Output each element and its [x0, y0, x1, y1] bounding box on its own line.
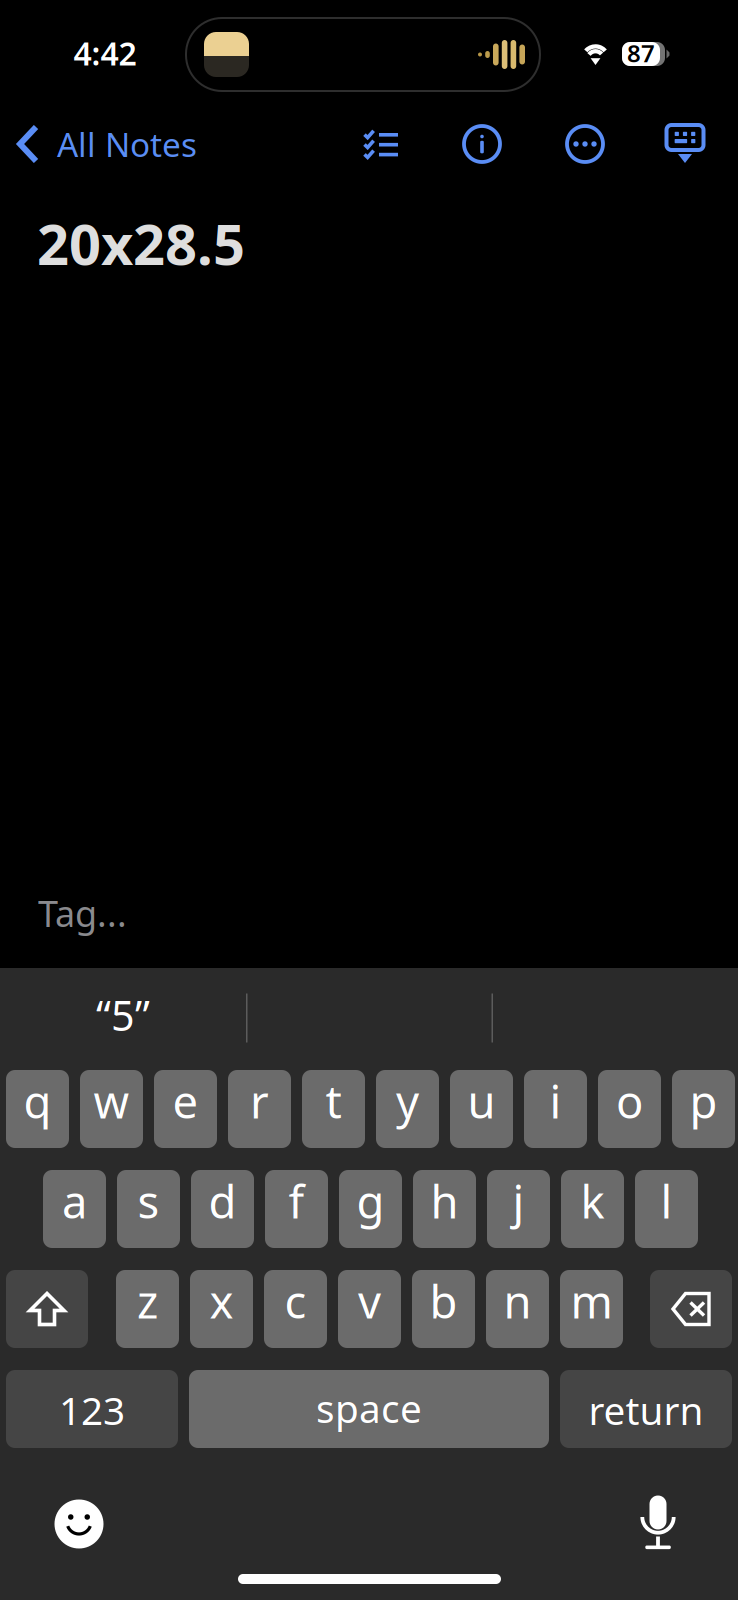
- button[interactable]: Emoji: [39, 1493, 119, 1555]
- staticText: s: [137, 1171, 159, 1231]
- staticText: w: [93, 1071, 129, 1131]
- staticText: q: [23, 1071, 51, 1131]
- button[interactable]: o: [598, 1070, 661, 1148]
- button[interactable]: v: [338, 1270, 401, 1348]
- button[interactable]: All Notes: [0, 108, 209, 180]
- button[interactable]: n: [486, 1270, 549, 1348]
- staticText: u: [467, 1071, 495, 1131]
- staticText: 20x28.5: [37, 206, 245, 280]
- button[interactable]: j: [487, 1170, 550, 1248]
- staticText: f: [288, 1171, 304, 1231]
- button[interactable]: i: [524, 1070, 587, 1148]
- staticText: 123: [59, 1384, 125, 1436]
- button[interactable]: p: [672, 1070, 735, 1148]
- button[interactable]: Delete: [650, 1270, 732, 1348]
- button[interactable]: c: [264, 1270, 327, 1348]
- staticText: i: [549, 1071, 561, 1131]
- button[interactable]: d: [191, 1170, 254, 1248]
- staticText: a: [62, 1171, 87, 1231]
- staticText: x: [209, 1271, 233, 1331]
- staticText: return: [588, 1384, 703, 1436]
- staticText: z: [137, 1271, 158, 1331]
- button[interactable]: z: [116, 1270, 179, 1348]
- staticText: “5”: [96, 988, 150, 1042]
- button[interactable]: Checklist: [345, 108, 417, 180]
- staticText: c: [284, 1271, 306, 1331]
- button[interactable]: Shift: [6, 1270, 88, 1348]
- staticText: l: [660, 1171, 672, 1231]
- staticText: v: [358, 1271, 381, 1331]
- staticText: b: [429, 1271, 457, 1331]
- button[interactable]: More: [549, 108, 621, 180]
- button[interactable]: u: [450, 1070, 513, 1148]
- staticText: e: [172, 1071, 198, 1131]
- button[interactable]: g: [339, 1170, 402, 1248]
- button[interactable]: f: [265, 1170, 328, 1248]
- button[interactable]: e: [154, 1070, 217, 1148]
- button[interactable]: space: [189, 1370, 549, 1448]
- button[interactable]: r: [228, 1070, 291, 1148]
- button[interactable]: s: [117, 1170, 180, 1248]
- staticText: d: [208, 1171, 236, 1231]
- button[interactable]: Hide Keyboard: [649, 108, 721, 180]
- staticText: k: [580, 1171, 604, 1231]
- button[interactable]: h: [413, 1170, 476, 1248]
- staticText: m: [570, 1271, 612, 1331]
- staticText: y: [396, 1071, 419, 1131]
- staticText: n: [503, 1271, 531, 1331]
- staticText: All Notes: [57, 122, 197, 166]
- button[interactable]: Info: [446, 108, 518, 180]
- button[interactable]: m: [560, 1270, 623, 1348]
- button[interactable]: x: [190, 1270, 253, 1348]
- staticText: g: [356, 1171, 384, 1231]
- button[interactable]: a: [43, 1170, 106, 1248]
- staticText: t: [325, 1071, 341, 1131]
- button[interactable]: w: [80, 1070, 143, 1148]
- staticText: j: [512, 1171, 524, 1231]
- button[interactable]: k: [561, 1170, 624, 1248]
- staticText: p: [689, 1071, 717, 1131]
- staticText: space: [316, 1382, 422, 1434]
- button[interactable]: b: [412, 1270, 475, 1348]
- button[interactable]: q: [6, 1070, 69, 1148]
- button[interactable]: 123: [6, 1370, 178, 1448]
- staticText: h: [430, 1171, 458, 1231]
- staticText: o: [616, 1071, 643, 1131]
- button[interactable]: Dictate: [618, 1492, 698, 1554]
- staticText: r: [250, 1071, 269, 1131]
- staticText: 4:42: [73, 32, 136, 74]
- staticText: 87: [627, 37, 655, 69]
- button[interactable]: t: [302, 1070, 365, 1148]
- staticText: Tag...: [38, 889, 127, 937]
- button[interactable]: return: [560, 1370, 732, 1448]
- button[interactable]: l: [635, 1170, 698, 1248]
- button[interactable]: y: [376, 1070, 439, 1148]
